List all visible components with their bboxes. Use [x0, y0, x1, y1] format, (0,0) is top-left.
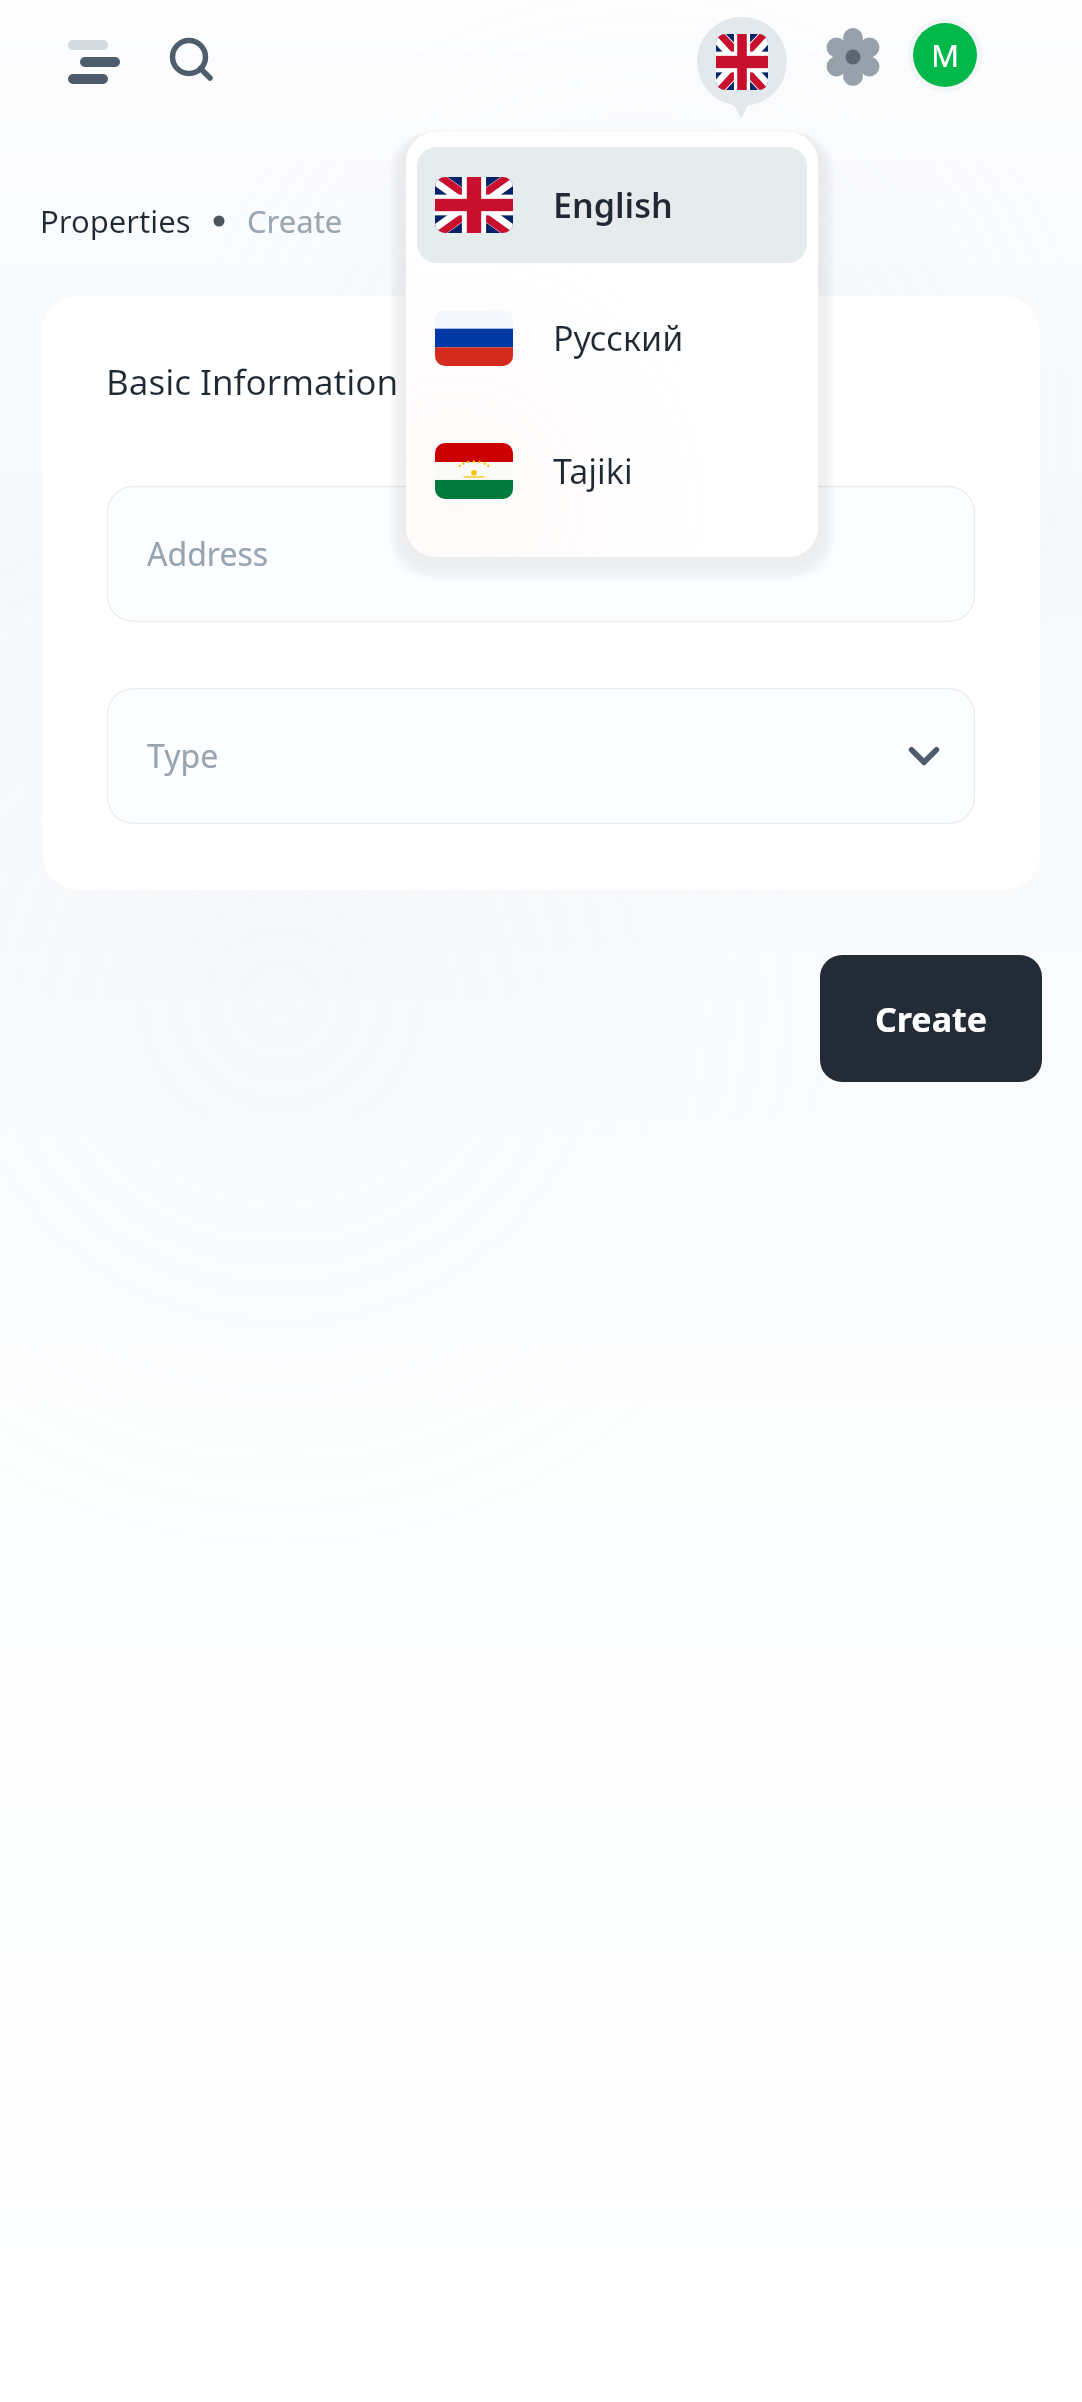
- button[interactable]: Address: [107, 486, 975, 622]
- staticText: Tajiki: [553, 448, 633, 494]
- button[interactable]: Tajiki: [417, 413, 807, 529]
- staticText: Type: [147, 734, 219, 778]
- staticText: Create: [875, 996, 988, 1042]
- button[interactable]: Search: [162, 32, 222, 92]
- staticText: Basic Information: [106, 358, 399, 406]
- button[interactable]: Create: [820, 955, 1042, 1082]
- button[interactable]: Settings: [822, 26, 884, 88]
- button[interactable]: Русский: [417, 280, 807, 396]
- staticText: Русский: [553, 315, 684, 361]
- button[interactable]: Profile: [908, 18, 982, 92]
- staticText: Address: [147, 532, 269, 576]
- staticText: M: [931, 34, 960, 76]
- button[interactable]: English: [417, 147, 807, 263]
- staticText: English: [553, 182, 673, 228]
- staticText: Create: [247, 200, 343, 242]
- button[interactable]: Change language: [694, 14, 790, 126]
- staticText: Properties: [40, 200, 191, 242]
- button[interactable]: Menu: [42, 30, 100, 88]
- button[interactable]: Properties: [40, 200, 191, 242]
- button[interactable]: Type: [107, 688, 975, 824]
